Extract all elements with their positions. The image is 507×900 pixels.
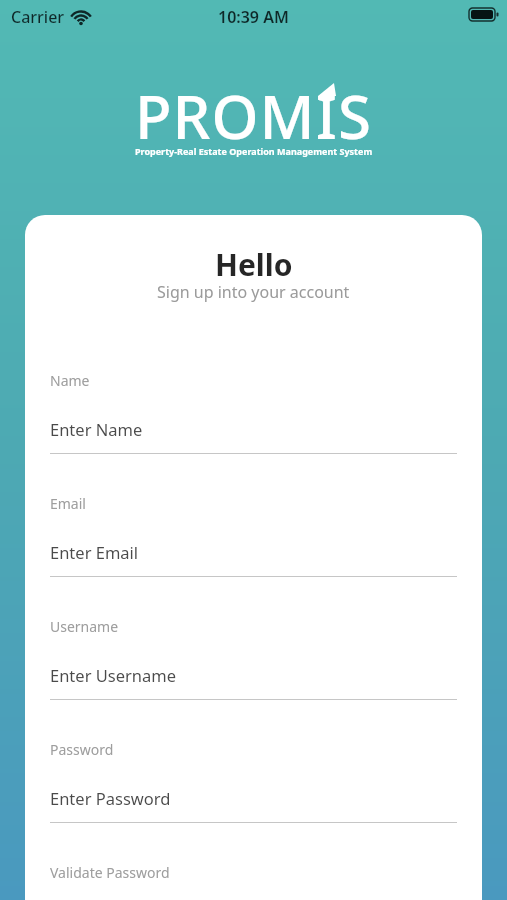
staticText: Enter Password [50, 787, 171, 809]
staticText: Validate Password [50, 863, 170, 882]
staticText: Property-Real Estate Operation Managemen… [135, 145, 373, 157]
staticText: Name [50, 371, 90, 390]
button[interactable]: Enter Name [50, 418, 457, 454]
button[interactable]: Enter Password [50, 787, 457, 823]
staticText: 10:39 AM [218, 6, 289, 28]
staticText: Enter Email [50, 541, 139, 563]
staticText: Username [50, 617, 119, 636]
button[interactable]: Enter Username [50, 664, 457, 700]
staticText: Sign up into your account [157, 281, 350, 303]
staticText: Carrier [11, 6, 65, 28]
staticText: Enter Name [50, 418, 143, 440]
button[interactable]: Enter Email [50, 541, 457, 577]
staticText: Hello [215, 244, 293, 285]
staticText: Email [50, 494, 86, 513]
staticText: Password [50, 740, 114, 759]
staticText: Enter Username [50, 664, 177, 686]
staticText: PROMIS [135, 75, 372, 157]
